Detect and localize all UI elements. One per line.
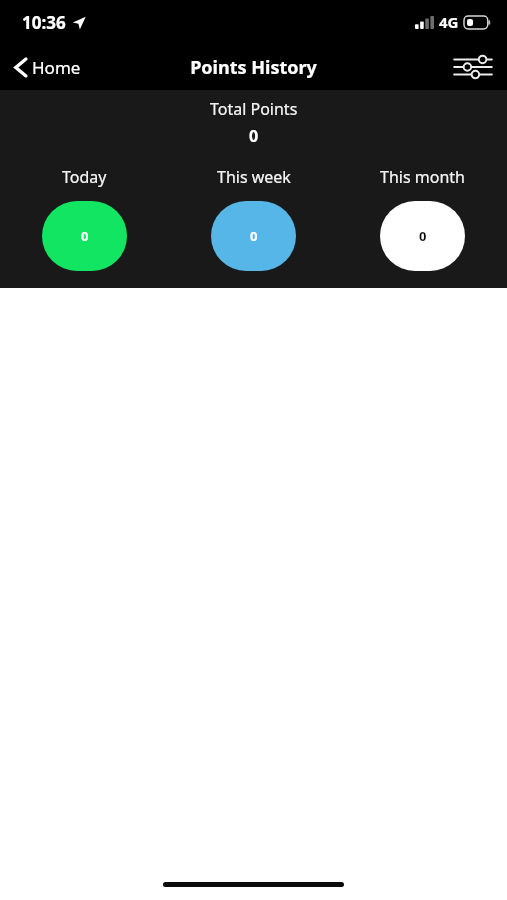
staticText: Total Points bbox=[210, 98, 298, 120]
staticText: 0 bbox=[419, 227, 427, 245]
staticText: 4G bbox=[439, 12, 459, 32]
staticText: 10:36 bbox=[22, 11, 66, 34]
staticText: 0 bbox=[249, 125, 259, 147]
staticText: This month bbox=[380, 166, 465, 188]
button[interactable]: This month bbox=[338, 166, 507, 271]
staticText: Home bbox=[32, 56, 81, 79]
staticText: This week bbox=[217, 166, 291, 188]
button[interactable]: This week bbox=[169, 166, 338, 271]
staticText: 0 bbox=[250, 227, 258, 245]
button[interactable]: Filter options bbox=[439, 46, 507, 88]
button[interactable]: Home bbox=[0, 50, 93, 85]
staticText: Points History bbox=[190, 55, 317, 80]
staticText: Today bbox=[62, 166, 107, 188]
button[interactable]: Today bbox=[0, 166, 169, 271]
staticText: 0 bbox=[81, 227, 89, 245]
